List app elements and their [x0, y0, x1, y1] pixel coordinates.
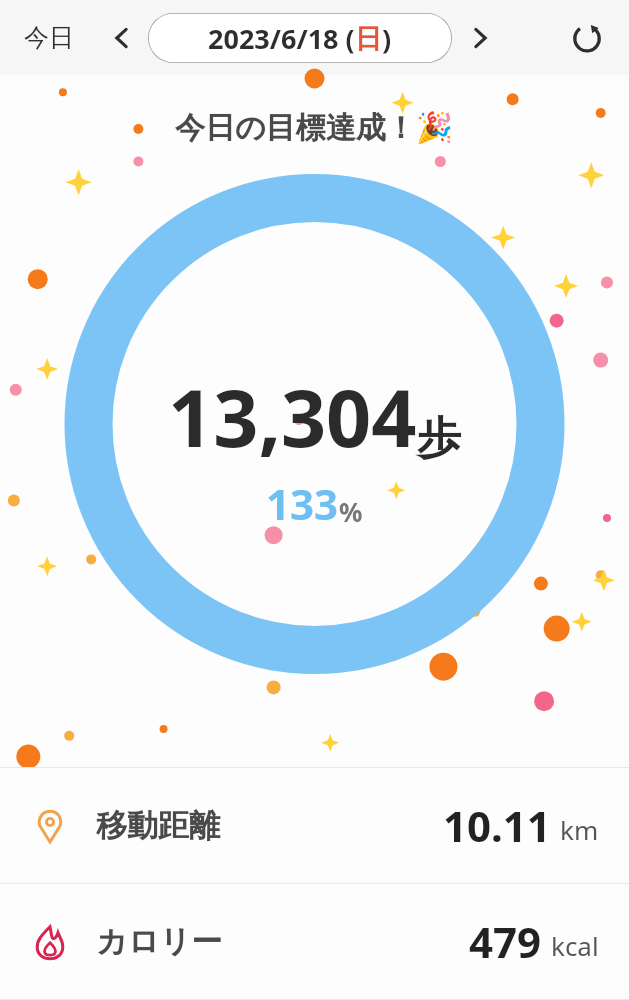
staticText: 日 [355, 22, 382, 56]
staticText: 今日 [24, 22, 74, 53]
button[interactable]: カロリー [0, 884, 629, 999]
button[interactable]: 移動距離 [0, 768, 629, 883]
staticText: カロリー [96, 922, 223, 961]
staticText: 10.11 [443, 797, 551, 854]
staticText: % [339, 494, 363, 529]
button[interactable]: 今日 [10, 14, 88, 61]
staticText: km [560, 812, 599, 847]
button[interactable]: 2023/6/18 ( [148, 13, 452, 63]
staticText: 今日の目標達成！🎉 [175, 109, 454, 147]
button[interactable]: 更新 [561, 12, 613, 64]
button[interactable]: 前の日 [100, 16, 144, 60]
staticText: 2023/6/18 ( [208, 20, 355, 57]
staticText: ) [382, 20, 392, 57]
button[interactable]: 次の日 [458, 16, 502, 60]
staticText: kcal [551, 928, 599, 963]
staticText: 歩 [417, 411, 461, 466]
staticText: 133 [266, 475, 339, 532]
staticText: 移動距離 [96, 806, 220, 845]
staticText: 13,304 [168, 363, 417, 471]
staticText: 479 [469, 913, 542, 970]
